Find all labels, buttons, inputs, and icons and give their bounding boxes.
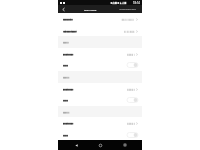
staticText: Kanal 1 xyxy=(63,40,70,42)
staticText: Alarm xyxy=(63,64,68,66)
button[interactable]: Recent apps xyxy=(118,140,132,150)
staticText: Kanal 2 xyxy=(127,87,135,90)
staticText: Kanal 2 xyxy=(63,76,70,78)
staticText: Kanal 3 xyxy=(63,111,70,113)
staticText: Kanal 1 xyxy=(127,52,135,55)
staticText: Kanal 2 xyxy=(127,89,135,92)
staticText: Kanal 1 xyxy=(63,41,70,43)
staticText: Gerätename xyxy=(63,53,74,55)
staticText: Gerätename xyxy=(63,89,74,91)
staticText: Alarm xyxy=(63,134,68,136)
staticText: Kanal 1 xyxy=(63,41,70,43)
staticText: Kanal 3 xyxy=(127,123,135,126)
staticText: Alarm xyxy=(63,134,68,136)
staticText: Gerätename xyxy=(63,123,74,125)
staticText: -20°C/+40°C xyxy=(121,19,135,22)
staticText: Alarm xyxy=(63,99,68,101)
staticText: Kanal 2 xyxy=(63,77,70,79)
staticText: Alarm xyxy=(63,100,68,102)
staticText: Gerätename xyxy=(63,89,74,91)
staticText: Gerätename xyxy=(63,122,74,124)
staticText: Kanal 2 xyxy=(127,88,135,91)
staticText: Kanal 1 xyxy=(63,42,70,44)
staticText: Luftfeuchtigkeit xyxy=(63,31,77,33)
staticText: Gerätename xyxy=(63,88,74,90)
staticText: Alarm xyxy=(63,134,68,136)
button[interactable]: Alarm xyxy=(58,129,142,141)
staticText: Mein Gerät xyxy=(84,8,97,11)
button[interactable]: Luftfeuchtigkeit xyxy=(58,25,142,37)
staticText: Gerätename xyxy=(63,87,74,89)
staticText: Neukonfiguration xyxy=(119,8,137,11)
button[interactable]: Gerätename xyxy=(58,83,142,95)
staticText: Kanal 3 xyxy=(63,111,70,113)
staticText: Luftfeuchtigkeit xyxy=(63,30,77,32)
staticText: Alarm xyxy=(63,99,68,101)
staticText: Temperatur xyxy=(63,19,73,21)
staticText: Gerätename xyxy=(63,88,74,90)
button[interactable]: Alarm toggle xyxy=(127,62,138,68)
staticText: Kanal 2 xyxy=(127,89,135,92)
staticText: Alarm xyxy=(63,135,68,137)
staticText: Alarm xyxy=(63,65,68,67)
staticText: Gerätename xyxy=(63,53,74,55)
staticText: Alarm xyxy=(63,134,68,136)
staticText: Alarm xyxy=(63,133,68,135)
staticText: Alarm xyxy=(63,100,68,102)
staticText: Luftfeuchtigkeit xyxy=(63,30,77,32)
staticText: Kanal 1 xyxy=(127,53,135,56)
button[interactable]: Home xyxy=(93,140,107,150)
staticText: Gerätename xyxy=(63,54,74,56)
staticText: Temperatur xyxy=(63,18,73,20)
staticText: -20°C/+40°C xyxy=(121,19,135,22)
staticText: Temperatur xyxy=(63,18,73,20)
staticText: 18:14 xyxy=(133,1,140,5)
staticText: Kanal 3 xyxy=(63,110,70,112)
staticText: Gerätename xyxy=(63,122,74,124)
staticText: 21%~95% xyxy=(124,30,135,33)
button[interactable]: Back xyxy=(60,5,67,13)
button[interactable]: Alarm xyxy=(58,59,142,71)
staticText: Kanal 3 xyxy=(63,112,70,114)
staticText: Gerätename xyxy=(63,52,74,54)
staticText: Gerätename xyxy=(63,53,74,55)
staticText: Kanal 3 xyxy=(63,112,70,114)
staticText: Gerätename xyxy=(63,88,74,90)
staticText: 21%~95% xyxy=(124,31,135,34)
staticText: -20°C/+40°C xyxy=(121,17,135,20)
staticText: 21%~95% xyxy=(124,31,135,34)
staticText: Gerätename xyxy=(63,88,74,90)
staticText: Temperatur xyxy=(63,17,73,19)
button[interactable]: Neukonfiguration xyxy=(118,6,142,13)
staticText: Kanal 3 xyxy=(127,122,135,125)
staticText: Alarm xyxy=(63,65,68,67)
staticText: Gerätename xyxy=(63,123,74,125)
button[interactable]: Back xyxy=(69,140,83,150)
staticText: Temperatur xyxy=(63,18,73,20)
staticText: -20°C/+40°C xyxy=(121,18,135,21)
staticText: Alarm xyxy=(63,63,68,65)
staticText: Gerätename xyxy=(63,122,74,124)
staticText: Luftfeuchtigkeit xyxy=(63,31,77,33)
button[interactable]: Alarm toggle xyxy=(127,97,138,103)
staticText: Mein Gerät xyxy=(84,8,97,11)
staticText: Gerätename xyxy=(63,121,74,123)
staticText: Kanal 1 xyxy=(127,54,135,57)
staticText: Luftfeuchtigkeit xyxy=(63,29,77,31)
button[interactable]: Gerätename xyxy=(58,117,142,129)
button[interactable]: Temperatur xyxy=(58,13,142,25)
staticText: Alarm xyxy=(63,64,68,66)
staticText: Kanal 1 xyxy=(127,54,135,57)
staticText: Temperatur xyxy=(63,18,73,20)
staticText: Kanal 2 xyxy=(63,75,70,77)
button[interactable]: Alarm xyxy=(58,94,142,106)
staticText: Temperatur xyxy=(63,19,73,21)
button[interactable]: Gerätename xyxy=(58,48,142,60)
staticText: Alarm xyxy=(63,99,68,101)
staticText: Gerätename xyxy=(63,54,74,56)
button[interactable]: Alarm toggle xyxy=(127,132,138,138)
staticText: Alarm xyxy=(63,64,68,66)
staticText: Kanal 3 xyxy=(127,121,135,124)
staticText: Kanal 2 xyxy=(63,76,70,78)
staticText: Alarm xyxy=(63,64,68,66)
